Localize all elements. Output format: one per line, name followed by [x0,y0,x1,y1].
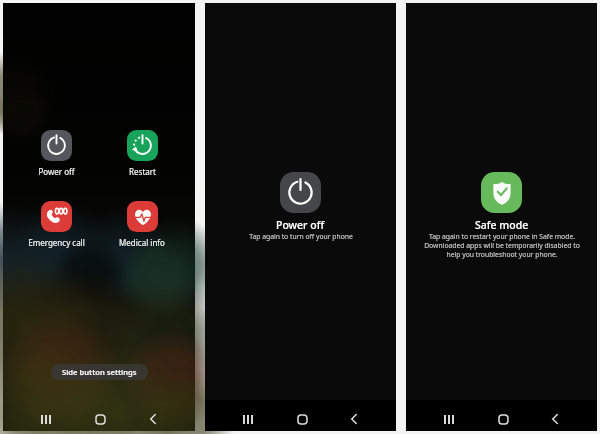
button[interactable]: Back [546,411,564,427]
button[interactable]: Back [144,411,162,427]
button[interactable]: Recents [239,411,257,427]
staticText: Tap again to turn off your phone [249,232,353,241]
button[interactable]: Side button settings [51,364,148,380]
staticText: Emergency call [28,237,85,248]
button[interactable]: Home [91,411,109,427]
button[interactable]: Recents [37,411,55,427]
button[interactable]: Home [293,411,311,427]
staticText: Medical info [119,237,165,248]
staticText: Side button settings [62,367,137,377]
staticText: Power off [276,218,325,232]
staticText: Power off [38,166,75,177]
button[interactable]: Home [494,411,512,427]
staticText: Safe mode [475,218,529,232]
button[interactable]: Safe mode [481,172,522,213]
button[interactable]: Power off [41,130,72,161]
button[interactable]: Back [345,411,363,427]
staticText: Restart [129,166,156,177]
button[interactable]: Emergency call [41,201,72,232]
button[interactable]: Restart [127,130,158,161]
button[interactable]: Recents [440,411,458,427]
button[interactable]: Power off [280,172,321,213]
button[interactable]: Medical info [127,201,158,232]
staticText: Tap again to restart your phone in Safe … [424,232,580,259]
